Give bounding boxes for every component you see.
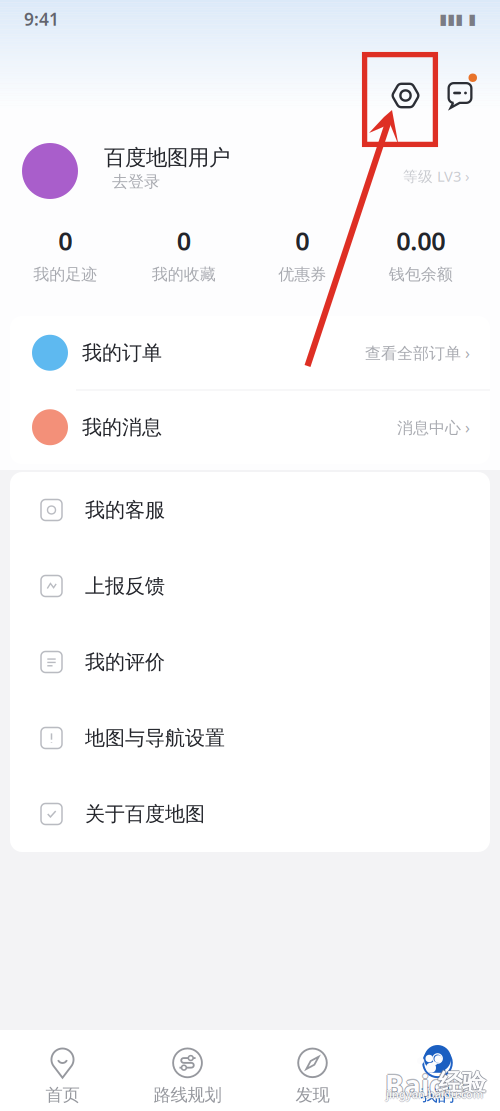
staticText: 我的消息 — [82, 415, 162, 440]
button[interactable]: 0 — [6, 220, 124, 288]
button[interactable]: 我的消息 — [10, 390, 490, 464]
staticText: Baidu — [386, 1066, 466, 1104]
button[interactable]: Messages — [445, 65, 475, 109]
button[interactable]: 0 — [243, 220, 361, 288]
staticText: 0 — [58, 224, 72, 257]
button[interactable]: 我的客服 — [10, 472, 490, 548]
staticText: 路线规划 — [153, 1084, 221, 1106]
staticText: 百度地图用户 — [104, 145, 230, 171]
button[interactable]: 发现 — [250, 1046, 375, 1106]
staticText: 我的订单 — [82, 340, 162, 365]
button[interactable]: 0 — [124, 220, 243, 288]
staticText: jingyan.baidu.com — [386, 1087, 483, 1101]
staticText: 关于百度地图 — [85, 802, 205, 826]
staticText: 0 — [295, 224, 309, 257]
button[interactable]: Settings — [385, 65, 429, 109]
staticText: 经验 — [438, 1067, 486, 1096]
staticText: 消息中心 › — [397, 417, 470, 438]
staticText: 经验 — [439, 1068, 487, 1097]
staticText: 发现 — [295, 1084, 329, 1106]
staticText: Baidu — [385, 1065, 465, 1103]
staticText: Baidu — [385, 1068, 465, 1105]
staticText: Baidu — [385, 1066, 465, 1104]
staticText: jingyan.baidu.com — [387, 1087, 484, 1101]
staticText: 经验 — [438, 1068, 486, 1097]
staticText: jingyan.baidu.com — [386, 1086, 483, 1100]
staticText: 9:41 — [24, 7, 59, 30]
button[interactable]: 地图与导航设置 — [10, 700, 490, 776]
staticText: 去登录 — [112, 172, 160, 191]
button[interactable]: 路线规划 — [125, 1046, 250, 1106]
button[interactable]: 上报反馈 — [10, 548, 490, 624]
staticText: 我的足迹 — [33, 264, 97, 284]
staticText: 我的 — [420, 1084, 454, 1106]
staticText: 我的收藏 — [152, 264, 216, 284]
staticText: 上报反馈 — [85, 574, 165, 598]
staticText: 经验 — [437, 1068, 485, 1097]
staticText: 地图与导航设置 — [85, 726, 225, 750]
staticText: ▮▮▮ ▮ — [439, 11, 476, 27]
staticText: 0.00 — [396, 224, 445, 257]
staticText: 首页 — [45, 1084, 79, 1106]
staticText: 查看全部订单 › — [365, 342, 470, 363]
staticText: 我的客服 — [85, 498, 165, 522]
staticText: jingyan.baidu.com — [385, 1087, 482, 1101]
button[interactable]: 我的 — [375, 1046, 500, 1106]
button[interactable]: 首页 — [0, 1046, 125, 1106]
button[interactable]: 我的评价 — [10, 624, 490, 700]
staticText: 我的评价 — [85, 650, 165, 674]
staticText: 钱包余额 — [389, 264, 453, 284]
button[interactable]: 关于百度地图 — [10, 776, 490, 852]
button[interactable]: 0.00 — [361, 220, 480, 288]
staticText: jingyan.baidu.com — [386, 1088, 483, 1102]
staticText: 经验 — [438, 1069, 486, 1099]
button[interactable]: 我的订单 — [10, 316, 490, 389]
staticText: 0 — [177, 224, 191, 257]
staticText: 等级 LV3 › — [403, 166, 470, 186]
staticText: 优惠券 — [278, 264, 326, 284]
button[interactable]: 百度地图用户 — [0, 136, 500, 216]
staticText: Baidu — [384, 1066, 464, 1104]
